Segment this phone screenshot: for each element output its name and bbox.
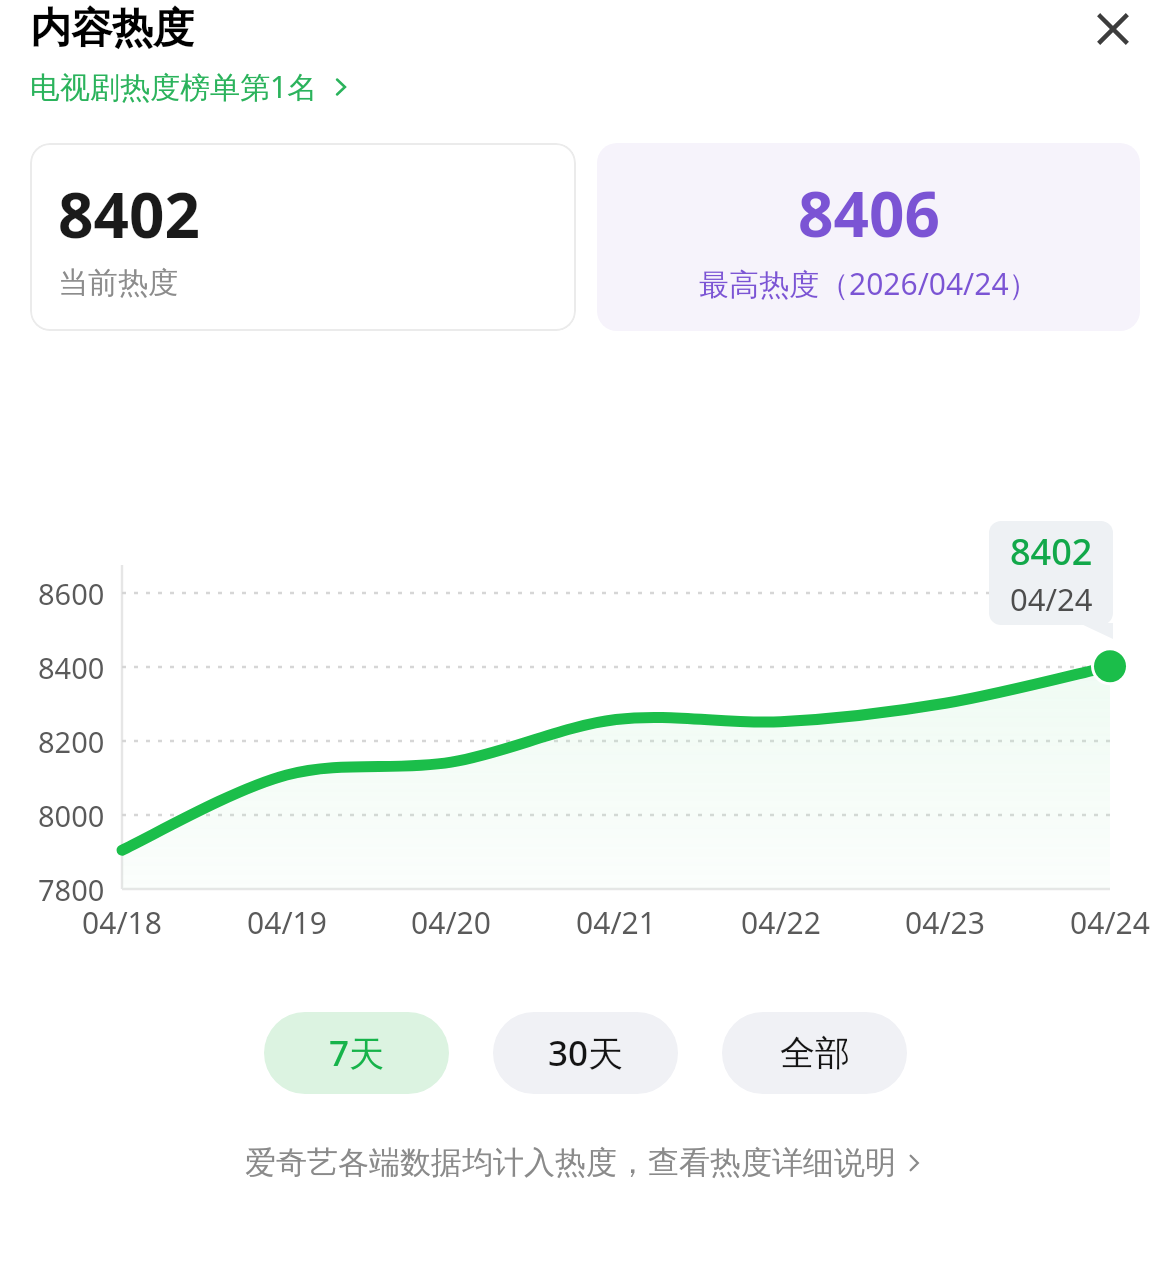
button[interactable]: 8406 — [597, 143, 1140, 331]
staticText: 内容热度 — [30, 3, 194, 55]
staticText: 04/21 — [576, 902, 656, 943]
button[interactable]: 7天 — [264, 1012, 449, 1094]
staticText: 8402 — [58, 172, 200, 256]
button[interactable]: 爱奇艺各端数据均计入热度，查看热度详细说明 — [0, 1143, 1170, 1182]
staticText: 7800 — [38, 870, 105, 909]
button[interactable]: 30天 — [493, 1012, 678, 1094]
staticText: 04/22 — [741, 902, 821, 943]
button[interactable]: 电视剧热度榜单第1名 — [30, 66, 352, 107]
staticText: 8402 — [1010, 527, 1093, 576]
staticText: 04/23 — [905, 902, 985, 943]
staticText: 04/24 — [1010, 578, 1093, 620]
staticText: 30天 — [548, 1029, 624, 1077]
staticText: 8200 — [38, 722, 105, 761]
staticText: 8000 — [38, 796, 105, 835]
staticText: 8600 — [38, 574, 105, 613]
staticText: 全部 — [780, 1031, 850, 1075]
staticText: 电视剧热度榜单第1名 — [30, 66, 318, 107]
staticText: 8400 — [38, 648, 105, 687]
staticText: 04/18 — [82, 902, 162, 943]
staticText: 04/20 — [411, 902, 491, 943]
button[interactable]: 8402 — [30, 143, 576, 331]
button[interactable]: 关闭 — [1081, 0, 1145, 61]
staticText: 当前热度 — [58, 264, 178, 302]
button[interactable]: 全部 — [722, 1012, 907, 1094]
staticText: 04/19 — [247, 902, 327, 943]
staticText: 04/24 — [1070, 902, 1150, 943]
staticText: 最高热度（2026/04/24） — [699, 263, 1039, 304]
staticText: 7天 — [329, 1029, 385, 1077]
staticText: 8406 — [798, 171, 940, 255]
staticText: 爱奇艺各端数据均计入热度，查看热度详细说明 — [245, 1143, 896, 1182]
